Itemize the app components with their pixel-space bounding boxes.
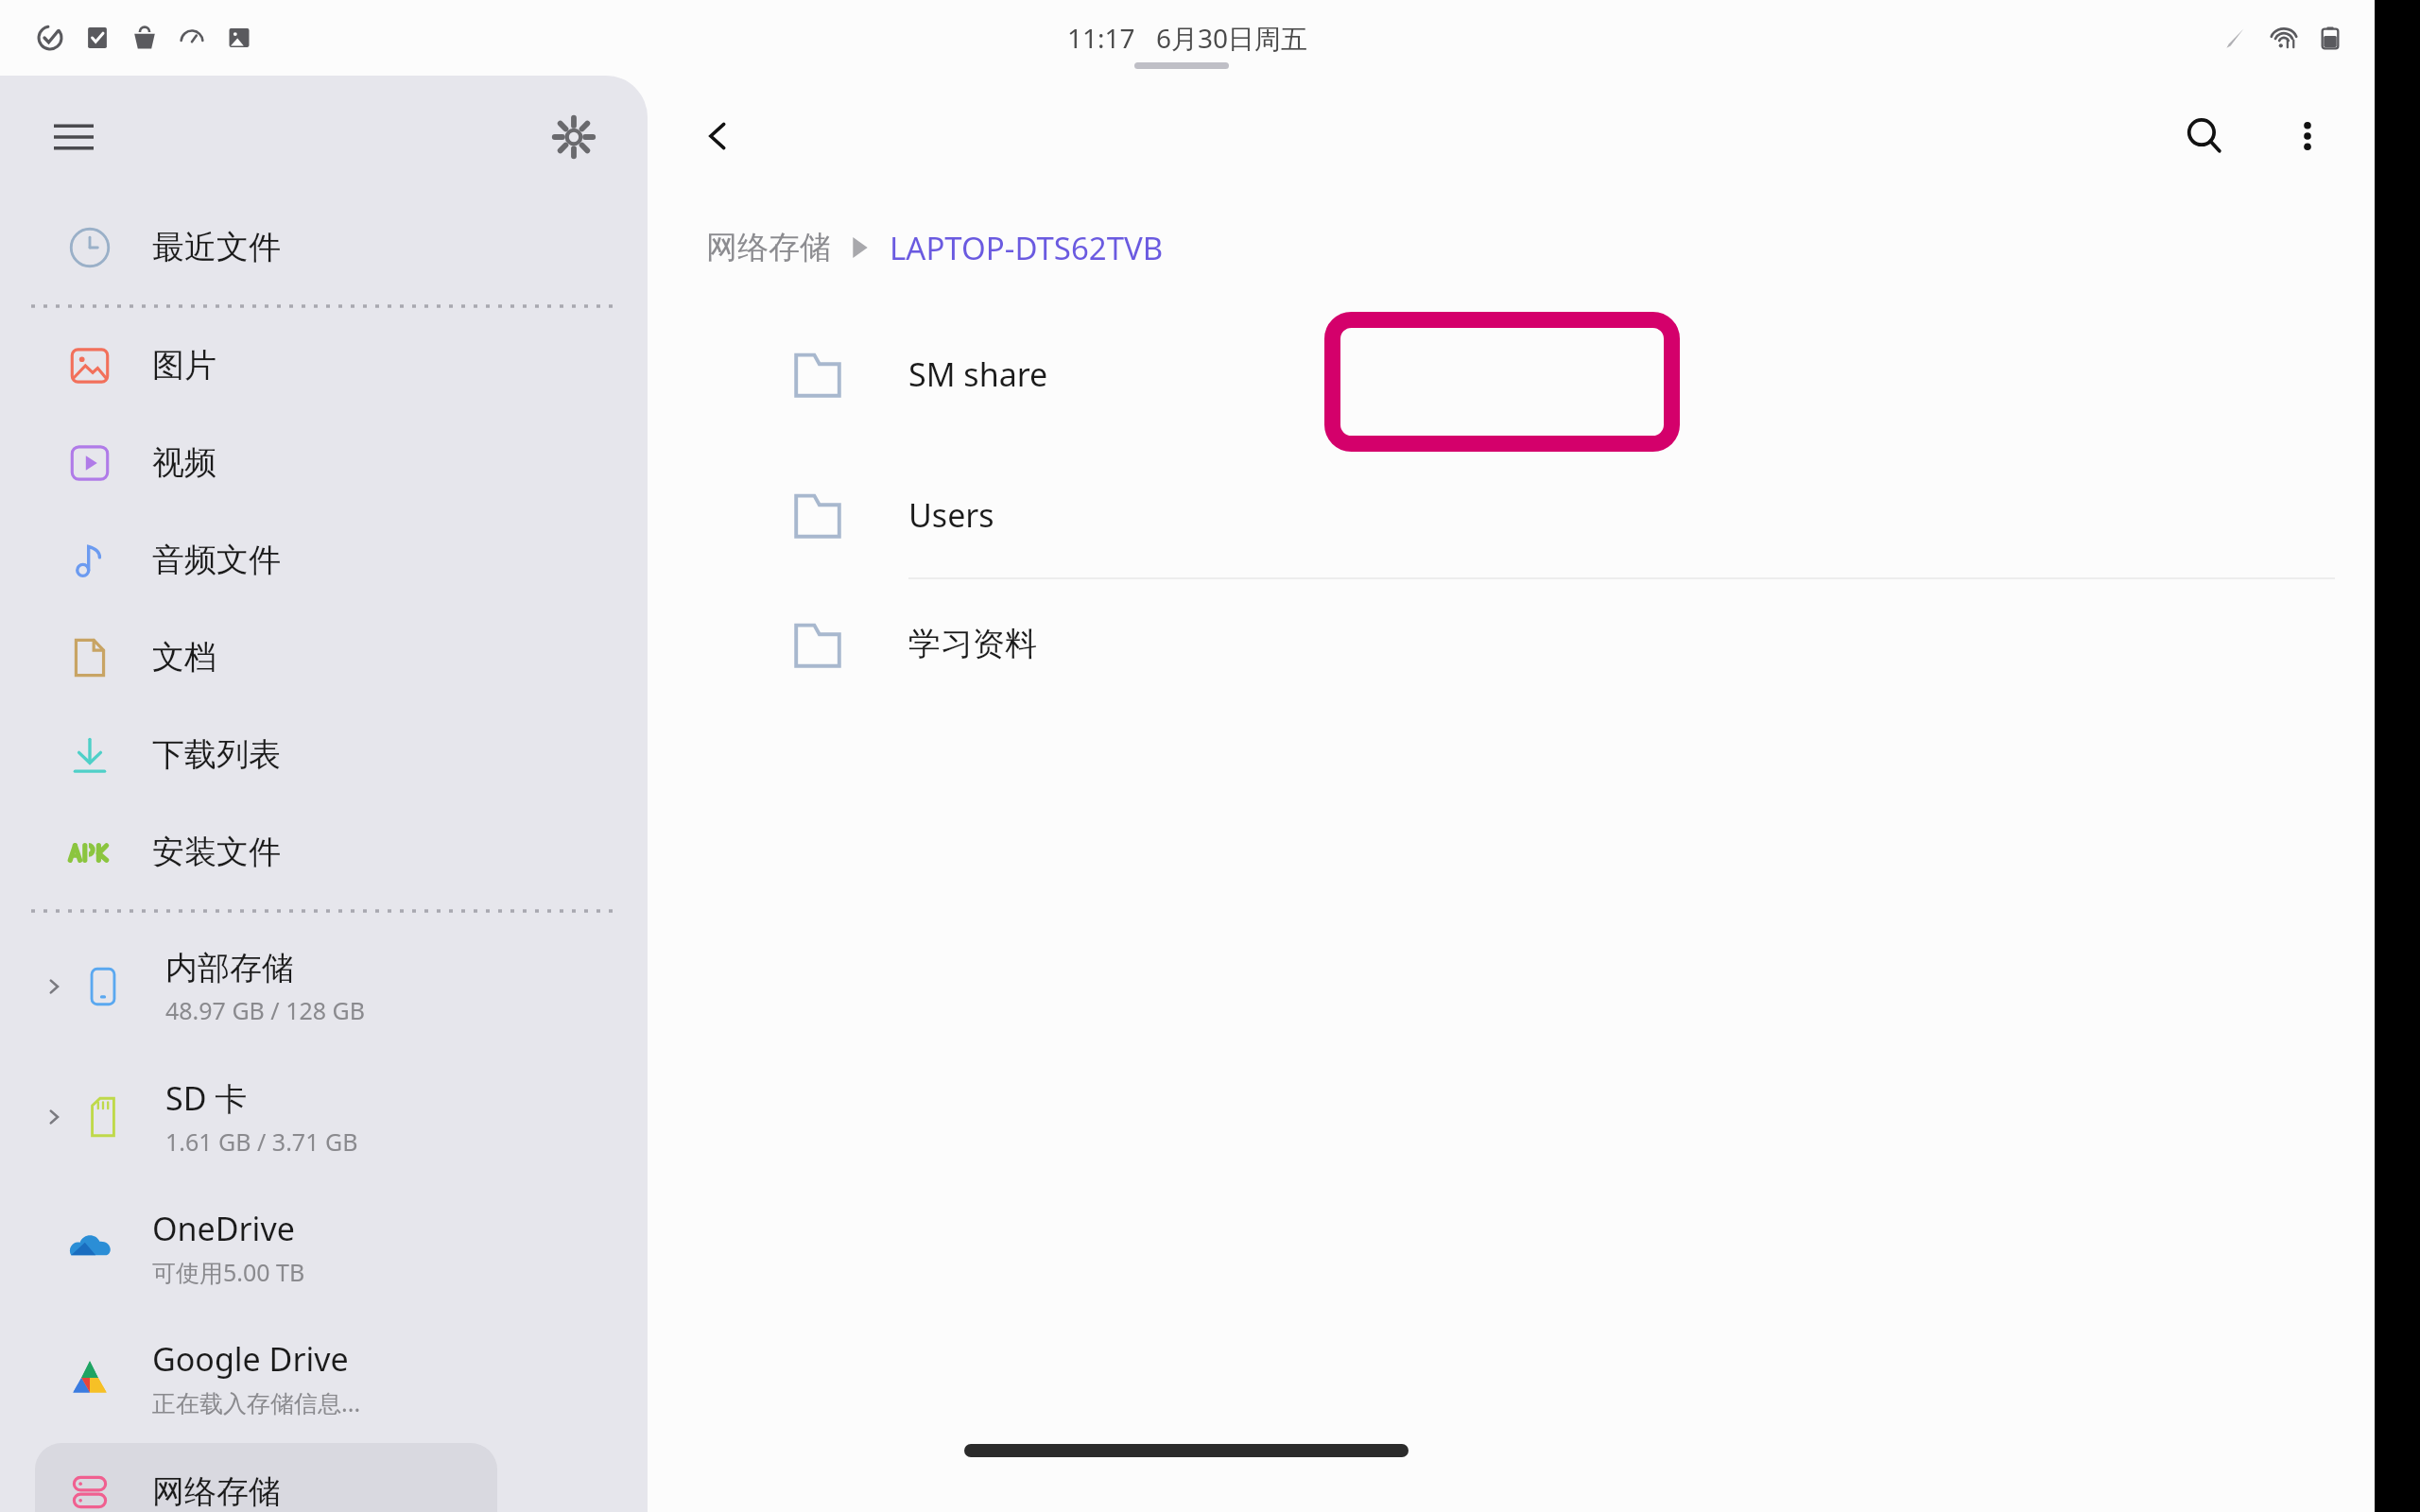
staticText: 网络存储 (152, 1471, 281, 1512)
staticText: SM share (908, 352, 1048, 396)
button[interactable]: More options (2274, 103, 2341, 169)
button[interactable]: LAPTOP-DTS62TVB (886, 223, 1167, 273)
button[interactable]: 安装文件 (35, 803, 497, 901)
button[interactable]: Search (2167, 98, 2242, 174)
staticText: 视频 (152, 442, 216, 483)
button[interactable]: 内部存储 (35, 921, 497, 1052)
staticText: Google Drive (152, 1337, 349, 1381)
button[interactable]: Users (789, 450, 2375, 579)
staticText: 11:17 (1067, 20, 1135, 56)
button[interactable]: 视频 (35, 414, 497, 511)
staticText: 学习资料 (908, 624, 1037, 664)
staticText: LAPTOP-DTS62TVB (890, 227, 1164, 269)
button[interactable]: 音频文件 (35, 511, 497, 609)
button[interactable]: 网络存储 (702, 224, 835, 271)
button[interactable]: SM share (789, 299, 2375, 450)
button[interactable]: 图片 (35, 317, 497, 414)
staticText: 内部存储 (165, 948, 294, 988)
button[interactable]: 学习资料 (789, 579, 2375, 709)
button[interactable]: OneDrive (35, 1182, 497, 1313)
staticText: SD 卡 (165, 1076, 248, 1120)
button[interactable]: Settings (540, 103, 608, 171)
button[interactable]: 网络存储 (35, 1443, 497, 1512)
button[interactable]: Google Drive (35, 1313, 497, 1443)
staticText: OneDrive (152, 1207, 295, 1250)
button[interactable]: SD 卡 (35, 1052, 497, 1182)
button[interactable]: Menu (40, 103, 108, 171)
staticText: 下载列表 (152, 734, 281, 775)
staticText: 网络存储 (706, 228, 831, 267)
staticText: 图片 (152, 345, 216, 386)
staticText: 最近文件 (152, 227, 281, 267)
staticText: 可使用5.00 TB (152, 1256, 305, 1288)
staticText: 安装文件 (152, 832, 281, 872)
staticText: 文档 (152, 637, 216, 678)
staticText: 1.61 GB / 3.71 GB (165, 1125, 358, 1158)
staticText: 48.97 GB / 128 GB (165, 994, 366, 1026)
staticText: Users (908, 493, 994, 537)
staticText: 6月30日周五 (1156, 20, 1308, 56)
button[interactable]: 最近文件 (35, 198, 497, 296)
staticText: 音频文件 (152, 540, 281, 580)
button[interactable]: 文档 (35, 609, 497, 706)
button[interactable]: Back (682, 100, 753, 172)
staticText: 正在载入存储信息... (152, 1386, 361, 1418)
button[interactable]: 下载列表 (35, 706, 497, 803)
